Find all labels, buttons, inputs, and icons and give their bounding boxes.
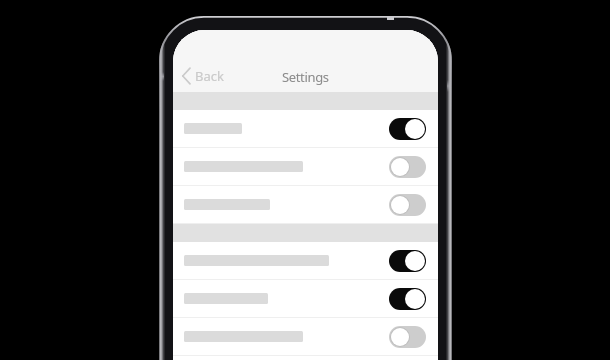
- button[interactable]: Setting 5: [173, 280, 438, 318]
- staticText: Settings: [282, 68, 329, 86]
- button[interactable]: Switch, on: [389, 118, 426, 140]
- button[interactable]: Back: [178, 64, 227, 88]
- staticText: Back: [195, 67, 224, 85]
- button[interactable]: Setting 2: [173, 148, 438, 186]
- button[interactable]: Setting 3: [173, 186, 438, 224]
- button[interactable]: Setting 6: [173, 318, 438, 356]
- button[interactable]: Switch, on: [389, 288, 426, 310]
- button[interactable]: Switch, off: [389, 326, 426, 348]
- button[interactable]: Setting 1: [173, 110, 438, 148]
- button[interactable]: Switch, off: [389, 156, 426, 178]
- button[interactable]: Setting 4: [173, 242, 438, 280]
- button[interactable]: Switch, on: [389, 250, 426, 272]
- button[interactable]: Switch, off: [389, 194, 426, 216]
